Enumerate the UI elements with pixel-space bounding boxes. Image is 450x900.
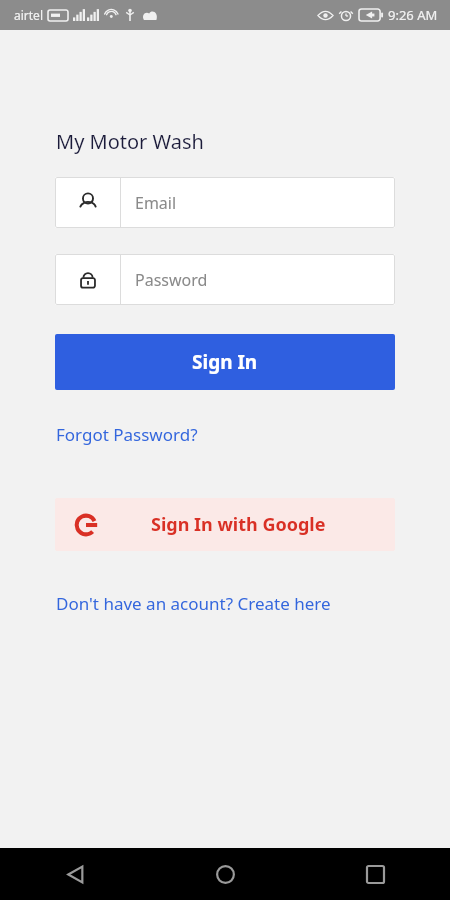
button[interactable]: Forgot Password?: [56, 419, 198, 450]
staticText: Don't have an acount? Create here: [56, 592, 331, 615]
button[interactable]: Recent apps: [300, 848, 450, 900]
staticText: Forgot Password?: [56, 423, 198, 446]
staticText: Password: [135, 269, 208, 291]
staticText: airtel: [14, 7, 43, 23]
button[interactable]: Password: [55, 254, 395, 305]
staticText: 9:26 AM: [388, 6, 438, 24]
staticText: Sign In with Google: [151, 512, 326, 537]
staticText: Sign In: [192, 349, 258, 375]
button[interactable]: Sign In: [55, 334, 395, 390]
button[interactable]: Back: [0, 848, 150, 900]
button[interactable]: Don't have an acount? Create here: [56, 588, 331, 619]
staticText: Email: [135, 192, 177, 214]
staticText: My Motor Wash: [56, 128, 204, 155]
button[interactable]: Home: [150, 848, 300, 900]
button[interactable]: Email: [55, 177, 395, 228]
button[interactable]: Sign In with Google: [55, 498, 395, 551]
